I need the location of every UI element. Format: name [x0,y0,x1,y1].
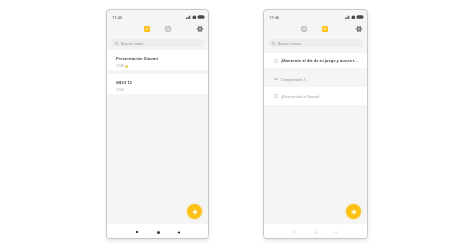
button[interactable]: Recents [287,225,301,238]
button[interactable]: Tasks [161,23,175,34]
button[interactable]: ¡Bienvenido a Tareas! [264,87,367,105]
staticText: Completado 1 [281,77,306,82]
staticText: 17:45 [116,88,124,92]
button[interactable]: Back [171,225,185,238]
button[interactable]: Back [328,225,342,238]
button[interactable]: Notes [297,23,311,34]
staticText: Presentación Xiaomi [116,56,158,62]
staticText: Buscar tareas [278,41,301,46]
button[interactable]: Add [187,204,202,219]
staticText: 17:46 [116,64,124,68]
button[interactable]: Home [308,225,322,238]
button[interactable]: Presentación Xiaomi [107,50,208,70]
button[interactable]: Home [151,225,165,238]
button[interactable]: Tasks [318,23,332,34]
button[interactable]: Settings [193,23,206,34]
button[interactable]: MIUI 12 [107,74,208,94]
button[interactable]: Completado 1 [274,71,367,87]
button[interactable]: Add [346,204,361,219]
staticText: ¡Mantente al día de tu juego y nunca t..… [281,58,358,63]
button[interactable]: Notes [140,23,154,34]
button[interactable]: Buscar notas [111,39,204,47]
button[interactable]: ¡Mantente al día de tu juego y nunca t..… [264,53,367,68]
button[interactable]: Recents [130,225,144,238]
staticText: ¡Bienvenido a Tareas! [281,94,320,99]
staticText: 17:46 [112,15,123,20]
button[interactable]: Settings [352,23,365,34]
staticText: 17:46 [269,15,280,20]
staticText: MIUI 12 [116,80,132,86]
button[interactable]: Buscar tareas [268,39,363,47]
staticText: Buscar notas [121,41,143,46]
